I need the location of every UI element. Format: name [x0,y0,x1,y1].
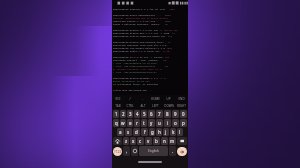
staticText: o [174,120,177,126]
button[interactable]: LEFT [149,102,162,109]
button[interactable]: k [170,128,176,136]
staticText: ALT [140,104,146,108]
button[interactable]: a [117,128,124,136]
button[interactable]: END [175,95,188,102]
button[interactable]: 0 [180,110,187,118]
button[interactable]: y [148,119,155,127]
button[interactable]: s [125,128,132,136]
staticText: 4 [136,111,139,117]
button[interactable]: English [139,146,168,156]
button[interactable]: , [123,146,130,156]
staticText: 0 [182,111,185,117]
button[interactable]: l [177,128,183,136]
button[interactable]: i [164,119,171,127]
staticText: Installing app-debug.apk ... [113,88,156,91]
staticText: 9 [174,111,177,117]
button[interactable]: d [133,128,140,136]
staticText: Downloading gradle-api-7.4.2.jar -> 22MB… [113,31,175,34]
staticText: k [172,129,175,135]
staticText: 7 [158,111,161,117]
button[interactable]: TAB [112,102,124,109]
button[interactable]: w [120,119,126,127]
button[interactable]: UP [162,95,175,102]
button[interactable]: g [149,128,155,136]
staticText: s [127,129,130,135]
button[interactable]: ESC [112,95,124,102]
staticText: TAB [115,104,121,108]
staticText: h [158,129,161,135]
staticText: END [178,97,185,101]
button[interactable]: RIGHT [175,102,188,109]
button[interactable]: 1 [113,110,119,118]
button[interactable]: / [124,95,136,102]
button[interactable]: 3 [127,110,133,118]
button[interactable]: 9 [172,110,179,118]
staticText: c [139,138,142,144]
button[interactable]: u [156,119,163,127]
button[interactable]: CTRL [124,102,136,109]
staticText: 8 [166,111,169,117]
button[interactable]: Backspace [177,137,187,145]
button[interactable]: n [161,137,168,145]
staticText: > Task :app:preBuild UP-TO-DATE [113,61,157,64]
staticText: ?123 [114,149,122,154]
button[interactable]: Emoji [131,146,138,156]
button[interactable]: 7 [156,110,163,118]
staticText: 6 [150,111,153,117]
button[interactable]: v [145,137,152,145]
staticText: u [158,120,161,126]
button[interactable]: z [123,137,129,145]
button[interactable]: r [134,119,140,127]
staticText: y [150,120,153,126]
staticText: . [172,148,174,154]
staticText: CTRL [126,104,134,108]
staticText: t [143,120,145,126]
button[interactable]: b [153,137,160,145]
button[interactable]: ALT [136,102,149,109]
staticText: > Task :app:mergeDebugResources [113,70,157,73]
button[interactable]: 6 [148,110,155,118]
staticText: > Task :app:compileDebugKotlin 1m [113,64,168,67]
staticText: Downloading gradle-7.4.2-all.zip -> tmp/… [113,28,178,31]
button[interactable]: e [127,119,133,127]
staticText: , [126,148,128,154]
staticText: 2 [122,111,125,117]
staticText: r [136,120,138,126]
staticText: a [119,129,122,135]
staticText: x [132,138,135,144]
button[interactable]: - [136,95,149,102]
staticText: i [167,120,169,126]
staticText: 34 actionable tasks: 34 executed [113,82,158,85]
staticText: UP [166,97,171,101]
button[interactable]: o [172,119,179,127]
button[interactable]: h [156,128,162,136]
button[interactable]: p [180,119,187,127]
staticText: b [155,138,158,144]
staticText: Unpacking gradle-7.4.2-all.zip .. done [113,19,171,22]
button[interactable]: x [130,137,136,145]
button[interactable]: q [113,119,119,127]
staticText: w: unused variable 'ctx' Main.kt:42 [113,67,163,70]
staticText: Downloading com.google.material:1.7.0 10… [113,46,173,49]
button[interactable]: 5 [141,110,147,118]
button[interactable]: 4 [134,110,140,118]
staticText: d [135,129,138,135]
staticText: DOWN [164,104,174,108]
staticText: p [182,120,185,126]
button[interactable]: m [169,137,176,145]
staticText: v [147,138,150,144]
staticText: Resolving androidx.core:core-ktx:1.9.0 [113,43,167,46]
button[interactable]: Enter [177,147,187,156]
staticText: RIGHT [177,104,186,108]
button[interactable]: 2 [120,110,126,118]
button[interactable]: f [141,128,148,136]
button[interactable]: ?123 [113,147,122,156]
button[interactable]: t [141,119,147,127]
button[interactable]: 8 [164,110,171,118]
button[interactable]: c [137,137,144,145]
button[interactable]: Shift [113,137,122,145]
button[interactable]: HOME [149,95,162,102]
button[interactable]: DOWN [162,102,175,109]
button[interactable]: j [163,128,169,136]
button[interactable]: . [169,146,176,156]
